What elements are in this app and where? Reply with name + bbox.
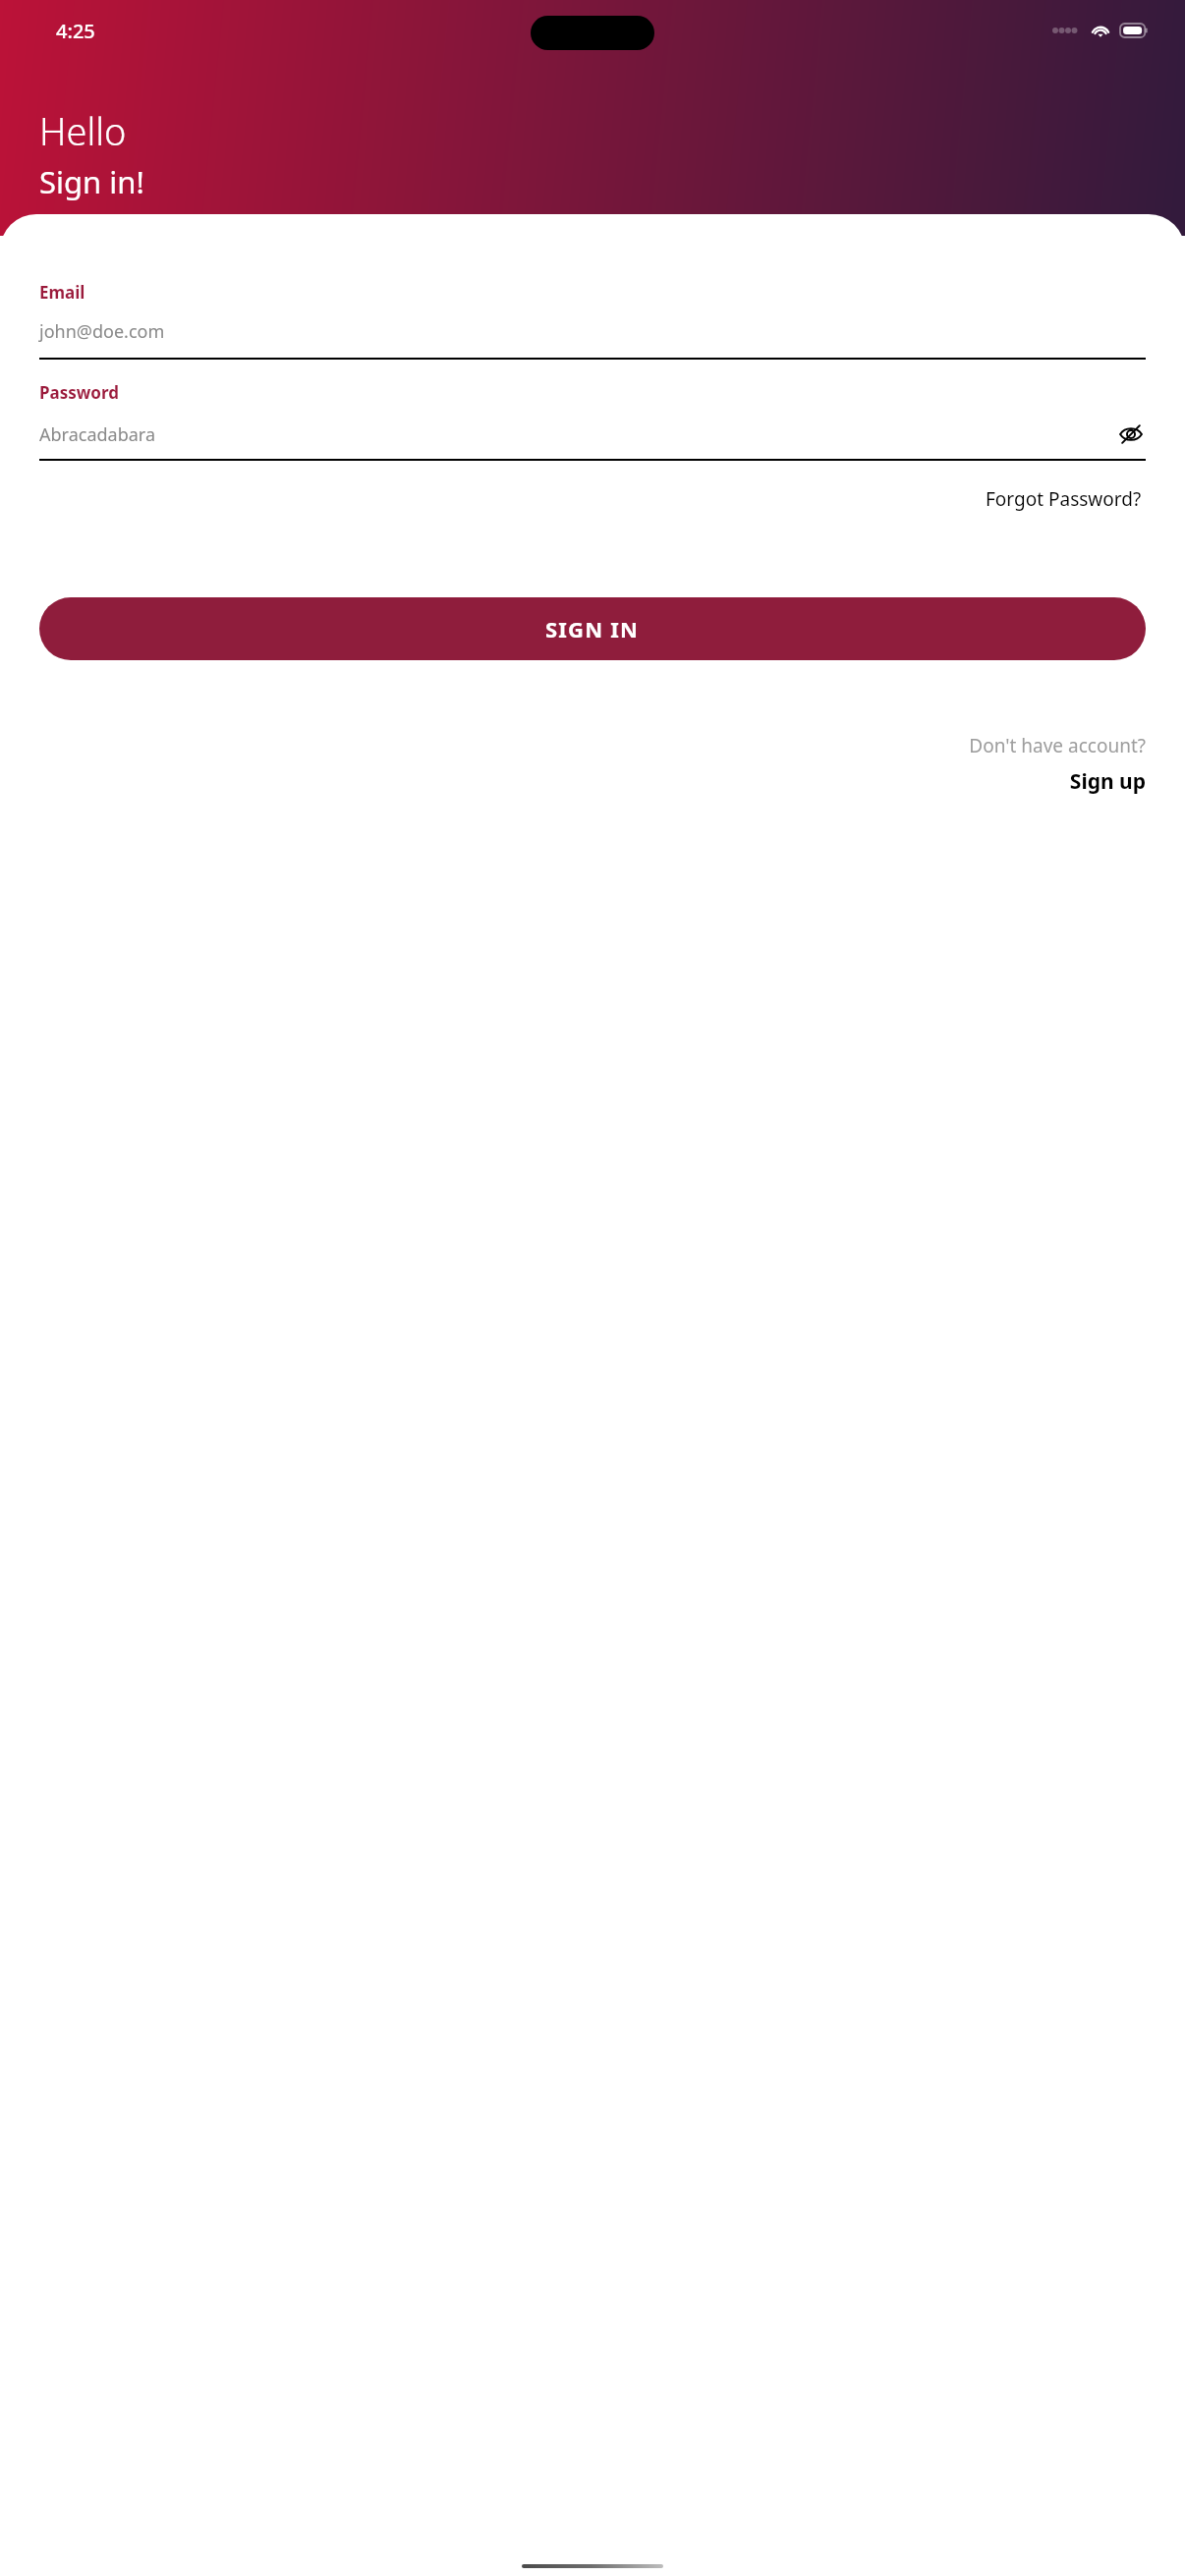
button[interactable]: Email	[39, 281, 1146, 360]
button[interactable]: Forgot Password?	[982, 482, 1146, 516]
staticText: Sign in!	[39, 161, 144, 202]
staticText: 4:25	[56, 18, 95, 44]
staticText: Email	[39, 281, 85, 304]
button[interactable]: Don't have account?	[39, 733, 1146, 796]
staticText: john@doe.com	[39, 319, 165, 344]
staticText: Don't have account?	[969, 733, 1146, 758]
button[interactable]: Password	[39, 381, 1146, 461]
button[interactable]: SIGN IN	[39, 597, 1146, 660]
staticText: SIGN IN	[545, 614, 640, 644]
staticText: Hello	[39, 105, 127, 156]
staticText: Abracadabara	[39, 422, 1116, 447]
staticText: Sign up	[1069, 767, 1146, 796]
button[interactable]: Show password	[1116, 420, 1146, 449]
staticText: Password	[39, 381, 119, 404]
